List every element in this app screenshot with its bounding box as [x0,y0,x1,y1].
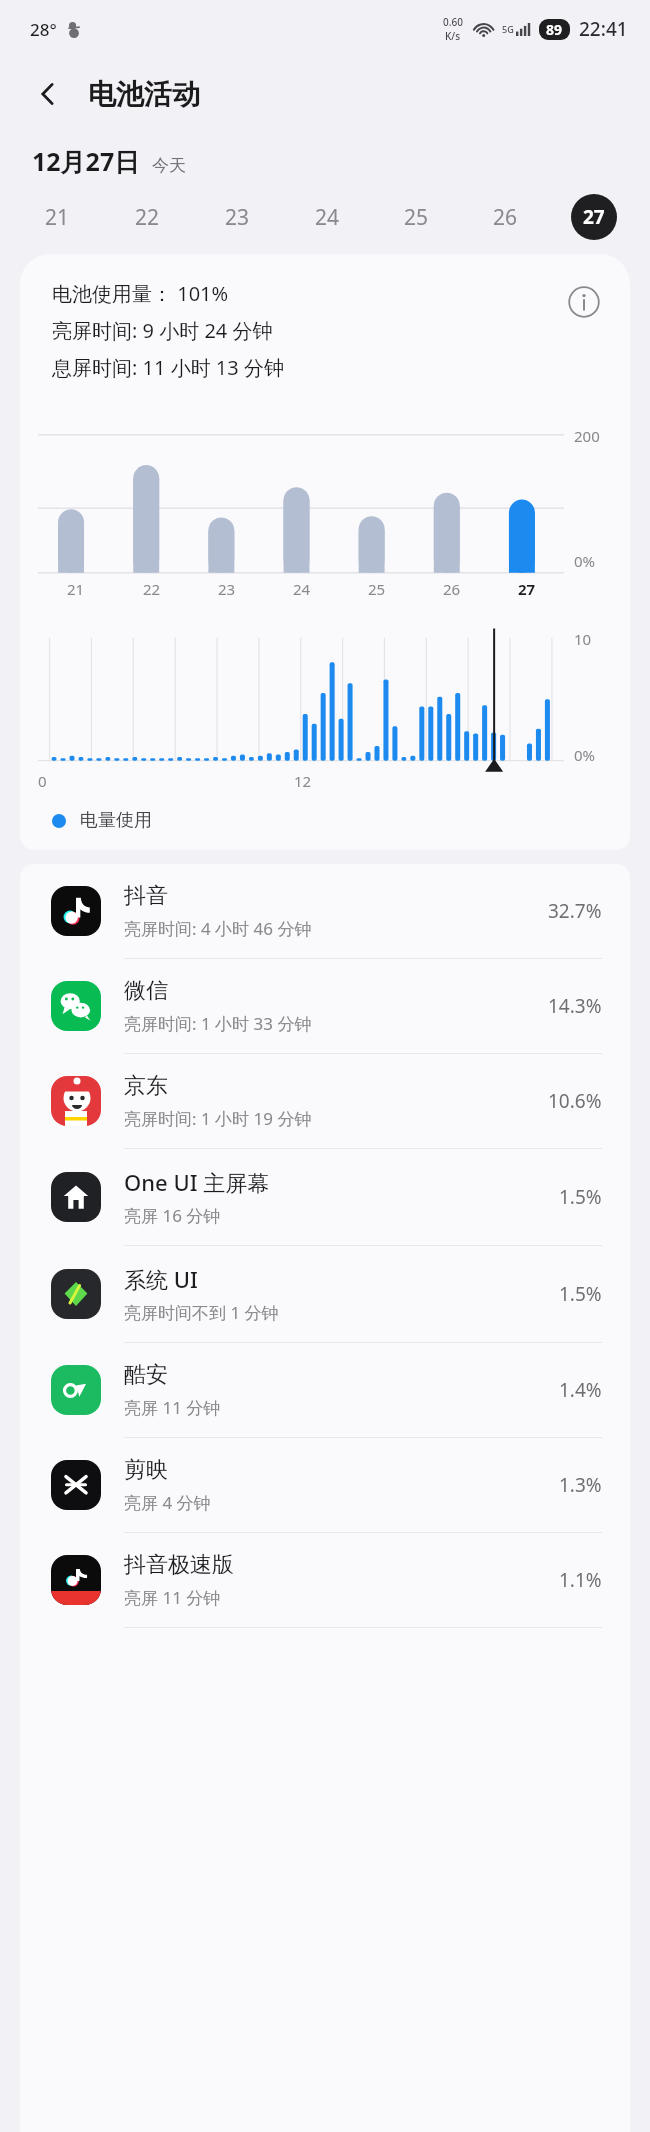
staticText: 亮屏时间: 1 小时 19 分钟 [124,1107,312,1130]
staticText: 0% [574,745,596,765]
staticText: 24 [315,203,340,232]
staticText: 抖音 [124,882,168,910]
button[interactable]: 抖音极速版 [20,1533,630,1627]
staticText: 14.3% [548,993,602,1019]
staticText: 26 [493,203,518,232]
staticText: K/s [445,29,461,43]
staticText: 23 [225,203,250,232]
staticText: 25 [404,203,429,232]
staticText: 0.60 [443,15,463,29]
staticText: 电池使用量： 101% [52,280,229,307]
staticText: 25 [368,579,386,599]
staticText: 5G [502,23,514,35]
staticText: 亮屏时间: 1 小时 33 分钟 [124,1012,312,1035]
staticText: 12月27日 [32,144,140,178]
staticText: One UI 主屏幕 [124,1167,270,1197]
button[interactable]: 26 [460,194,549,240]
staticText: 1.5% [559,1281,602,1307]
staticText: 京东 [124,1072,168,1100]
staticText: 系统 UI [124,1264,198,1294]
staticText: 亮屏时间: 4 小时 46 分钟 [124,917,312,940]
staticText: 21 [45,203,70,232]
button[interactable]: 剪映 [20,1438,630,1532]
staticText: 22 [143,579,161,599]
staticText: 200 [574,426,600,446]
button[interactable]: Info [564,282,604,322]
staticText: 电量使用 [80,809,152,832]
staticText: 1.5% [559,1184,602,1210]
staticText: 亮屏 4 分钟 [124,1491,211,1514]
button[interactable]: 京东 [20,1054,630,1148]
staticText: 息屏时间: 11 小时 13 分钟 [52,354,284,381]
staticText: 0% [574,551,596,571]
staticText: 今天 [152,155,186,176]
staticText: 21 [67,579,85,599]
staticText: 1.3% [559,1472,602,1498]
staticText: 10.6% [548,1088,602,1114]
button[interactable]: One UI 主屏幕 [20,1149,630,1245]
staticText: 28° [30,18,57,41]
button[interactable]: 微信 [20,959,630,1053]
button[interactable]: 25 [371,194,460,240]
staticText: 22 [135,203,160,232]
staticText: 剪映 [124,1456,168,1484]
staticText: 1.1% [559,1567,602,1593]
staticText: 微信 [124,977,168,1005]
staticText: 22:41 [579,16,628,42]
staticText: 27 [583,204,605,230]
staticText: 亮屏 16 分钟 [124,1204,221,1227]
button[interactable]: 24 [282,194,371,240]
staticText: 27 [518,579,536,599]
button[interactable]: 酷安 [20,1343,630,1437]
staticText: 亮屏 11 分钟 [124,1586,221,1609]
staticText: 24 [293,579,311,599]
staticText: 1.4% [559,1377,602,1403]
staticText: 亮屏 11 分钟 [124,1396,221,1419]
button[interactable]: 抖音 [20,864,630,958]
staticText: 89 [546,20,563,39]
staticText: 亮屏时间: 9 小时 24 分钟 [52,317,273,344]
button[interactable]: 23 [192,194,282,240]
staticText: 23 [218,579,236,599]
staticText: 亮屏时间不到 1 分钟 [124,1301,279,1324]
staticText: 电池活动 [88,77,200,112]
staticText: 26 [443,579,461,599]
staticText: 抖音极速版 [124,1551,234,1579]
button[interactable]: 27 [549,194,638,240]
button[interactable]: 系统 UI [20,1246,630,1342]
staticText: 0 [38,771,47,791]
staticText: 32.7% [548,898,602,924]
staticText: 酷安 [124,1361,168,1389]
staticText: 12 [294,771,312,791]
button[interactable]: 22 [102,194,192,240]
button[interactable]: 21 [12,194,102,240]
button[interactable]: Back [24,70,72,118]
staticText: 10 [574,629,592,649]
